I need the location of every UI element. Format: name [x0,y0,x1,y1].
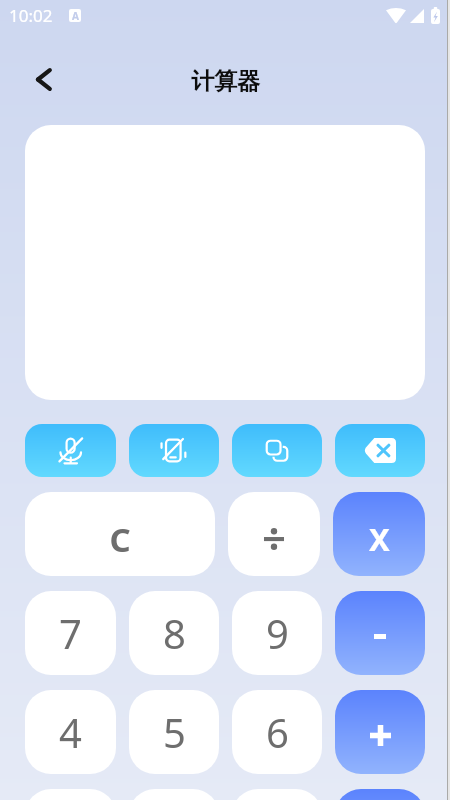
staticText: 10:02 [9,4,53,27]
button[interactable]: 7 [25,591,116,675]
button[interactable]: + [335,690,425,774]
staticText: 计算器 [191,67,260,96]
staticText: C [109,517,131,562]
button[interactable]: 9 [232,591,322,675]
button[interactable]: Back [21,57,65,101]
button[interactable]: - [335,591,425,675]
button[interactable]: ÷ [228,492,320,576]
button[interactable]: = [335,789,425,800]
staticText: A [72,9,79,22]
staticText: X [369,518,390,560]
button[interactable]: 5 [129,690,219,774]
button[interactable]: 3 [232,789,322,800]
button[interactable]: 6 [232,690,322,774]
staticText: 9 [266,606,289,660]
button[interactable]: 4 [25,690,116,774]
button[interactable]: 1 [25,789,116,800]
staticText: 8 [163,606,186,660]
button[interactable]: Backspace [335,424,425,477]
button[interactable]: 2 [129,789,219,800]
button[interactable]: C [25,492,215,576]
staticText: 4 [59,705,82,759]
staticText: 7 [59,606,82,660]
staticText: 5 [163,705,186,759]
button[interactable]: Copy [232,424,322,477]
button[interactable]: 8 [129,591,219,675]
button[interactable]: X [333,492,425,576]
button[interactable]: Mute [25,424,116,477]
staticText: 6 [266,705,289,759]
button[interactable]: Vibrate off [129,424,219,477]
